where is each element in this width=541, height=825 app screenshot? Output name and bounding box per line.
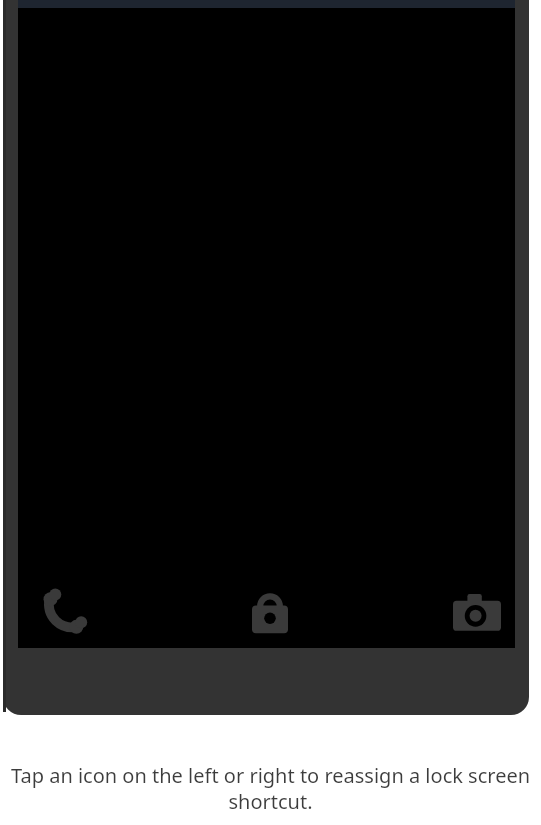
staticText: Tap an icon on the left or right to reas… bbox=[10, 762, 531, 815]
button[interactable]: Lock bbox=[237, 582, 303, 644]
button[interactable]: Phone shortcut bbox=[26, 582, 98, 644]
button[interactable]: Camera shortcut bbox=[444, 582, 510, 644]
